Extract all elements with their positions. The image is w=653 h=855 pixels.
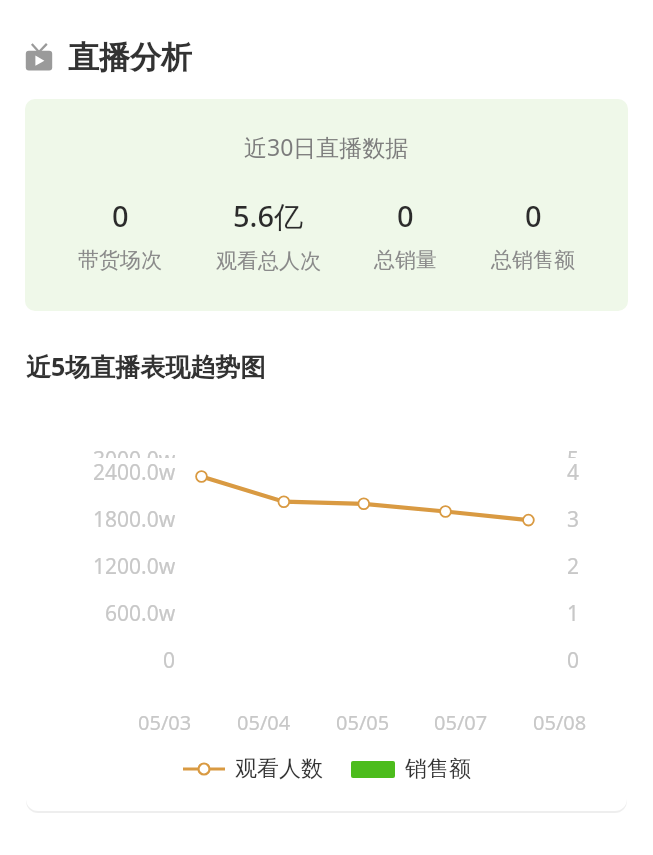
staticText: 05/03	[138, 709, 192, 736]
button[interactable]: 销售额	[351, 755, 471, 783]
staticText: 0	[567, 646, 580, 675]
staticText: 0	[397, 196, 414, 235]
staticText: 2400.0w	[93, 458, 176, 487]
staticText: 4	[567, 458, 580, 487]
staticText: 销售额	[405, 755, 471, 783]
staticText: 0	[112, 196, 129, 235]
button[interactable]: 5.6亿	[216, 196, 321, 274]
staticText: 05/08	[533, 709, 587, 736]
button[interactable]: 0	[374, 196, 437, 273]
button[interactable]: 3000.0w	[26, 411, 627, 811]
staticText: 近5场直播表现趋势图	[26, 349, 266, 383]
staticText: 05/07	[434, 709, 488, 736]
staticText: 600.0w	[105, 599, 176, 628]
staticText: 总销量	[374, 247, 437, 273]
staticText: 带货场次	[78, 247, 162, 273]
staticText: 0	[525, 196, 542, 235]
staticText: 总销售额	[491, 247, 575, 273]
staticText: 5.6亿	[233, 196, 304, 236]
staticText: 0	[163, 646, 176, 675]
staticText: 观看总人次	[216, 248, 321, 274]
other: Live broadcast	[24, 43, 54, 73]
button[interactable]: 近30日直播数据	[25, 99, 628, 311]
staticText: 观看人数	[235, 755, 323, 783]
staticText: 3	[567, 505, 580, 534]
staticText: 5	[567, 445, 580, 458]
staticText: 1	[567, 599, 580, 628]
staticText: 3000.0w	[93, 445, 176, 458]
button[interactable]: 0	[491, 196, 575, 273]
button[interactable]: Live broadcast	[24, 38, 653, 77]
staticText: 05/04	[237, 709, 291, 736]
staticText: 2	[567, 552, 580, 581]
staticText: 05/05	[336, 709, 390, 736]
button[interactable]: 0	[78, 196, 162, 273]
staticText: 直播分析	[68, 38, 192, 77]
staticText: 1200.0w	[93, 552, 176, 581]
button[interactable]: 观看人数	[183, 755, 323, 783]
staticText: 近30日直播数据	[244, 131, 409, 162]
staticText: 1800.0w	[93, 505, 176, 534]
